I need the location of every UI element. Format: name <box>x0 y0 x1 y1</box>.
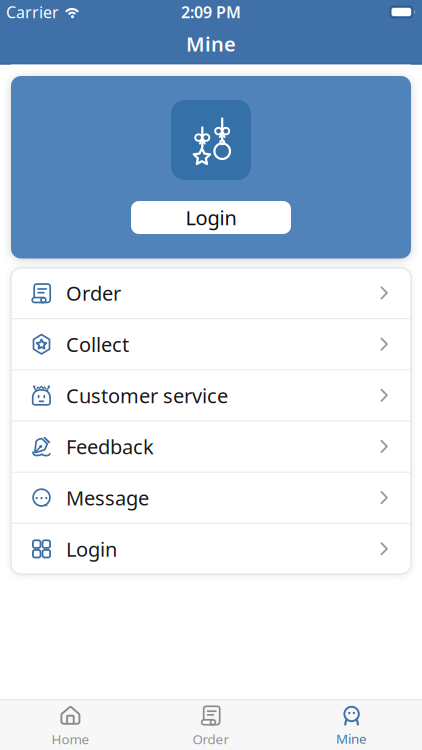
button[interactable]: Collect <box>11 319 411 369</box>
staticText: 2:09 PM <box>181 1 241 23</box>
staticText: Carrier <box>6 1 59 23</box>
staticText: Order <box>66 280 121 306</box>
staticText: Login <box>185 204 236 231</box>
button[interactable]: Order <box>11 268 411 318</box>
staticText: Login <box>66 536 117 562</box>
button[interactable]: Home <box>0 703 141 750</box>
staticText: Home <box>51 730 89 748</box>
button[interactable]: Feedback <box>11 421 411 472</box>
button[interactable]: Message <box>11 473 411 523</box>
staticText: Customer service <box>66 382 228 409</box>
button[interactable]: Login <box>11 524 411 574</box>
staticText: Collect <box>66 331 129 358</box>
staticText: Mine <box>336 730 367 747</box>
button[interactable]: Order <box>141 703 281 750</box>
button[interactable]: Customer service <box>11 370 411 420</box>
staticText: Order <box>192 730 229 748</box>
staticText: Message <box>66 484 149 511</box>
staticText: Feedback <box>66 433 154 460</box>
button[interactable]: Mine <box>281 703 422 750</box>
staticText: Mine <box>186 30 236 57</box>
button[interactable]: Login <box>131 201 291 234</box>
